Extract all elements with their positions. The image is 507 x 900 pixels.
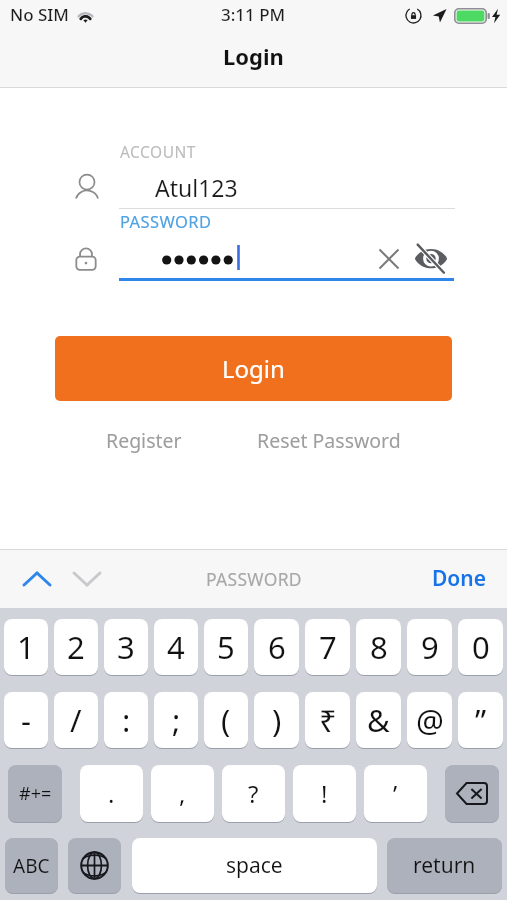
button[interactable]: , — [151, 765, 214, 822]
staticText: #+= — [19, 781, 52, 806]
button[interactable]: @ — [407, 692, 452, 748]
button[interactable]: . — [80, 765, 143, 822]
button[interactable]: ; — [154, 692, 198, 748]
staticText: 7 — [319, 626, 337, 668]
staticText: 6 — [268, 626, 286, 668]
staticText: 5 — [217, 626, 235, 668]
button[interactable]: Backspace — [445, 765, 499, 822]
button[interactable]: - — [4, 692, 48, 748]
staticText: ” — [475, 699, 487, 741]
staticText: Atul123 — [155, 172, 238, 203]
staticText: ? — [248, 777, 259, 810]
staticText: - — [21, 699, 31, 741]
staticText: Login — [222, 352, 285, 385]
staticText: PASSWORD — [206, 567, 302, 591]
staticText: 9 — [421, 626, 439, 668]
staticText: PASSWORD — [120, 210, 212, 232]
staticText: ! — [321, 777, 328, 810]
button[interactable]: Next field — [62, 557, 112, 601]
button[interactable]: 2 — [54, 619, 98, 675]
staticText: return — [413, 851, 476, 880]
button[interactable]: Show password — [410, 242, 452, 274]
button[interactable]: Register — [94, 421, 194, 460]
button[interactable]: return — [387, 838, 502, 893]
button[interactable]: ₹ — [305, 692, 350, 748]
staticText: ; — [172, 699, 181, 741]
button[interactable]: ABC — [5, 838, 58, 893]
staticText: Done — [432, 564, 487, 593]
button[interactable]: 8 — [356, 619, 401, 675]
button[interactable]: : — [104, 692, 148, 748]
button[interactable]: 0 — [458, 619, 503, 675]
button[interactable]: 7 — [305, 619, 350, 675]
staticText: Register — [106, 427, 182, 454]
button[interactable]: space — [132, 838, 377, 893]
button[interactable]: ) — [254, 692, 299, 748]
staticText: 3:11 PM — [221, 3, 286, 26]
staticText: Login — [223, 41, 284, 71]
button[interactable]: 6 — [254, 619, 299, 675]
staticText: 8 — [370, 626, 388, 668]
staticText: ’ — [393, 777, 398, 810]
button[interactable]: & — [356, 692, 401, 748]
button[interactable]: Login — [55, 336, 452, 401]
staticText: : — [122, 699, 131, 741]
button[interactable]: ( — [204, 692, 248, 748]
staticText: ₹ — [319, 699, 337, 741]
button[interactable]: 4 — [154, 619, 198, 675]
staticText: 1 — [17, 626, 35, 668]
button[interactable]: 1 — [4, 619, 48, 675]
staticText: No SIM — [10, 3, 69, 26]
staticText: 0 — [472, 626, 490, 668]
button[interactable]: 5 — [204, 619, 248, 675]
staticText: / — [70, 699, 82, 741]
staticText: . — [108, 777, 115, 810]
staticText: & — [367, 699, 390, 741]
staticText: @ — [416, 699, 444, 741]
button[interactable]: Reset Password — [245, 421, 413, 460]
button[interactable]: Clear password — [375, 245, 402, 272]
staticText: Reset Password — [257, 427, 401, 454]
button[interactable]: #+= — [8, 765, 62, 822]
staticText: space — [226, 851, 283, 880]
button[interactable]: Previous field — [12, 557, 62, 601]
staticText: , — [179, 777, 186, 810]
button[interactable]: ! — [293, 765, 356, 822]
staticText: ( — [221, 699, 231, 741]
button[interactable]: / — [54, 692, 98, 748]
button[interactable]: Change keyboard — [68, 838, 121, 893]
staticText: ABC — [13, 853, 50, 879]
staticText: ) — [272, 699, 282, 741]
button[interactable]: Done — [424, 558, 495, 599]
button[interactable]: ’ — [364, 765, 427, 822]
button[interactable]: ? — [222, 765, 285, 822]
staticText: 4 — [167, 626, 185, 668]
staticText: ACCOUNT — [120, 141, 196, 162]
staticText: 2 — [67, 626, 85, 668]
staticText: 3 — [117, 626, 135, 668]
button[interactable]: ” — [458, 692, 503, 748]
button[interactable]: 3 — [104, 619, 148, 675]
button[interactable]: 9 — [407, 619, 452, 675]
